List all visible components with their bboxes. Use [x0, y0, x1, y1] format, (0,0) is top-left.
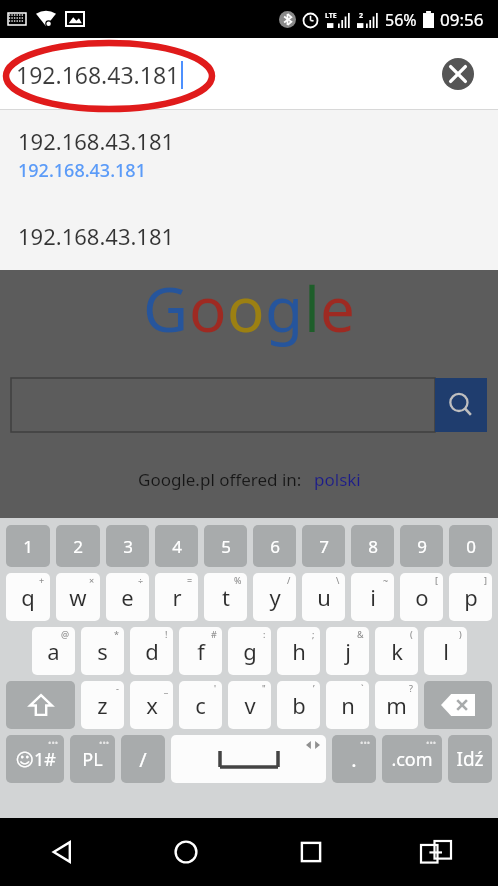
staticText: x — [146, 690, 158, 720]
staticText: 7 — [319, 535, 329, 558]
button[interactable]: 6 — [253, 525, 296, 567]
staticText: G — [143, 266, 189, 350]
button[interactable]: u — [302, 573, 345, 621]
staticText: w — [69, 582, 87, 612]
staticText: ! — [165, 628, 168, 640]
staticText: l — [443, 636, 449, 666]
staticText: n — [341, 690, 355, 720]
button[interactable]: j — [326, 627, 369, 675]
button[interactable]: 8 — [351, 525, 394, 567]
button[interactable]: p — [449, 573, 492, 621]
button[interactable]: polski — [314, 468, 361, 491]
button[interactable]: r — [155, 573, 198, 621]
staticText: _ — [164, 682, 168, 694]
staticText: j — [345, 636, 351, 666]
button[interactable]: 7 — [302, 525, 345, 567]
button[interactable]: y — [253, 573, 296, 621]
button[interactable]: g — [228, 627, 271, 675]
button[interactable]: 3 — [106, 525, 149, 567]
button[interactable]: t — [204, 573, 247, 621]
button[interactable] — [171, 735, 326, 783]
button[interactable]: o — [400, 573, 443, 621]
button[interactable]: i — [351, 573, 394, 621]
staticText: k — [391, 636, 403, 666]
staticText: \ — [336, 574, 340, 586]
button[interactable]: Recents — [248, 818, 373, 886]
button[interactable]: ☺1# — [6, 735, 64, 783]
button[interactable]: x — [130, 681, 173, 729]
staticText: 4 — [172, 535, 182, 558]
staticText: # — [211, 628, 217, 640]
staticText: 9 — [417, 535, 427, 558]
button[interactable]: PL — [70, 735, 115, 783]
staticText: e — [320, 266, 355, 350]
button[interactable]: e — [106, 573, 149, 621]
button[interactable]: 9 — [400, 525, 443, 567]
staticText: c — [195, 690, 206, 720]
staticText: + — [39, 574, 45, 586]
button[interactable]: f — [179, 627, 222, 675]
staticText: l — [304, 266, 320, 350]
button[interactable]: b — [277, 681, 320, 729]
button[interactable]: 2 — [56, 525, 100, 567]
staticText: / — [139, 746, 147, 773]
staticText: 0 — [466, 535, 476, 558]
button[interactable]: h — [277, 627, 320, 675]
button[interactable]: Switch apps — [373, 818, 498, 886]
button[interactable]: 5 — [204, 525, 247, 567]
staticText: 3 — [123, 535, 133, 558]
button[interactable]: . — [332, 735, 376, 783]
button[interactable]: 1 — [6, 525, 50, 567]
button[interactable]: v — [228, 681, 271, 729]
staticText: g — [243, 636, 257, 666]
staticText: Google.pl offered in: — [138, 468, 302, 491]
button[interactable]: s — [81, 627, 124, 675]
staticText: 192.168.43.181 — [18, 158, 146, 183]
staticText: ••• — [48, 736, 59, 748]
staticText: 56% — [385, 9, 417, 31]
button[interactable]: n — [326, 681, 369, 729]
button[interactable]: m — [375, 681, 418, 729]
button[interactable]: Idź — [448, 735, 492, 783]
staticText: y — [269, 582, 281, 612]
button[interactable]: w — [56, 573, 100, 621]
button[interactable]: k — [375, 627, 418, 675]
button[interactable]: c — [179, 681, 222, 729]
staticText: * — [114, 628, 119, 640]
staticText: polski — [314, 468, 361, 491]
staticText: b — [292, 690, 306, 720]
button[interactable] — [6, 681, 75, 729]
button[interactable]: l — [424, 627, 467, 675]
staticText: m — [386, 690, 407, 720]
button[interactable]: / — [121, 735, 165, 783]
staticText: PL — [82, 747, 103, 772]
button[interactable]: 0 — [449, 525, 492, 567]
button[interactable]: d — [130, 627, 173, 675]
button[interactable]: 4 — [155, 525, 198, 567]
staticText: 2 — [359, 11, 364, 21]
staticText: ; — [312, 628, 315, 640]
staticText: 09:56 — [440, 8, 484, 31]
staticText: ’ — [313, 682, 315, 694]
button[interactable]: Clear — [442, 58, 474, 90]
button[interactable]: q — [6, 573, 50, 621]
button[interactable]: z — [81, 681, 124, 729]
staticText: ~ — [383, 574, 389, 586]
button[interactable]: Home — [124, 818, 248, 886]
staticText: i — [370, 582, 376, 612]
staticText: : — [263, 628, 266, 640]
button[interactable]: 192.168.43.181 — [0, 110, 498, 202]
staticText: % — [234, 574, 242, 586]
button[interactable]: 192.168.43.181 — [0, 38, 498, 110]
button[interactable]: Back — [0, 818, 124, 886]
button[interactable]: 192.168.43.181 — [0, 202, 498, 270]
staticText: .com — [391, 747, 433, 772]
staticText: a — [47, 636, 60, 666]
button[interactable]: a — [32, 627, 75, 675]
button[interactable]: .com — [382, 735, 442, 783]
staticText: & — [357, 628, 364, 640]
staticText: ☺1# — [15, 747, 56, 772]
staticText: f — [197, 636, 205, 666]
button[interactable] — [11, 378, 487, 432]
button[interactable] — [424, 681, 492, 729]
